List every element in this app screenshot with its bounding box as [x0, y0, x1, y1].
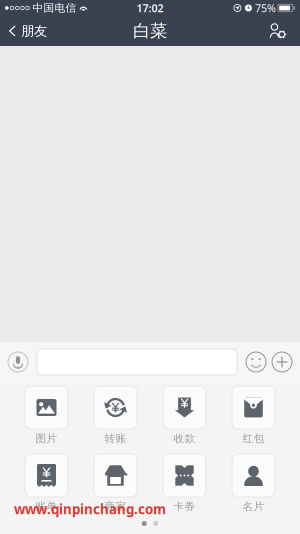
button[interactable]: 名片 — [219, 453, 288, 513]
button[interactable]: 转账 — [81, 385, 150, 445]
button[interactable]: 卡券 — [150, 453, 219, 513]
staticText: 75% — [255, 1, 276, 15]
staticText: 17:02 — [136, 1, 163, 15]
staticText: 商家 — [104, 500, 126, 513]
button[interactable]: 商家 — [81, 453, 150, 513]
button[interactable]: 图片 — [12, 385, 81, 445]
staticText: www.qinpinchang.com — [14, 500, 166, 518]
button[interactable]: 账单 — [12, 453, 81, 513]
button[interactable] — [243, 349, 269, 375]
staticText: 卡券 — [173, 500, 195, 513]
button[interactable] — [5, 349, 31, 375]
staticText: 图片 — [35, 432, 57, 445]
staticText: 朋友 — [21, 23, 47, 39]
staticText: 收款 — [173, 432, 195, 445]
button[interactable] — [259, 16, 300, 46]
staticText: 白菜 — [133, 20, 167, 42]
staticText: 转账 — [104, 432, 126, 445]
button[interactable] — [269, 349, 295, 375]
staticText: 中国电信 — [32, 1, 76, 14]
button[interactable]: 朋友 — [0, 16, 57, 46]
staticText: 名片 — [242, 500, 264, 513]
staticText: 红包 — [242, 432, 264, 445]
button[interactable]: 红包 — [219, 385, 288, 445]
staticText: 账单 — [35, 500, 57, 513]
button[interactable]: 收款 — [150, 385, 219, 445]
